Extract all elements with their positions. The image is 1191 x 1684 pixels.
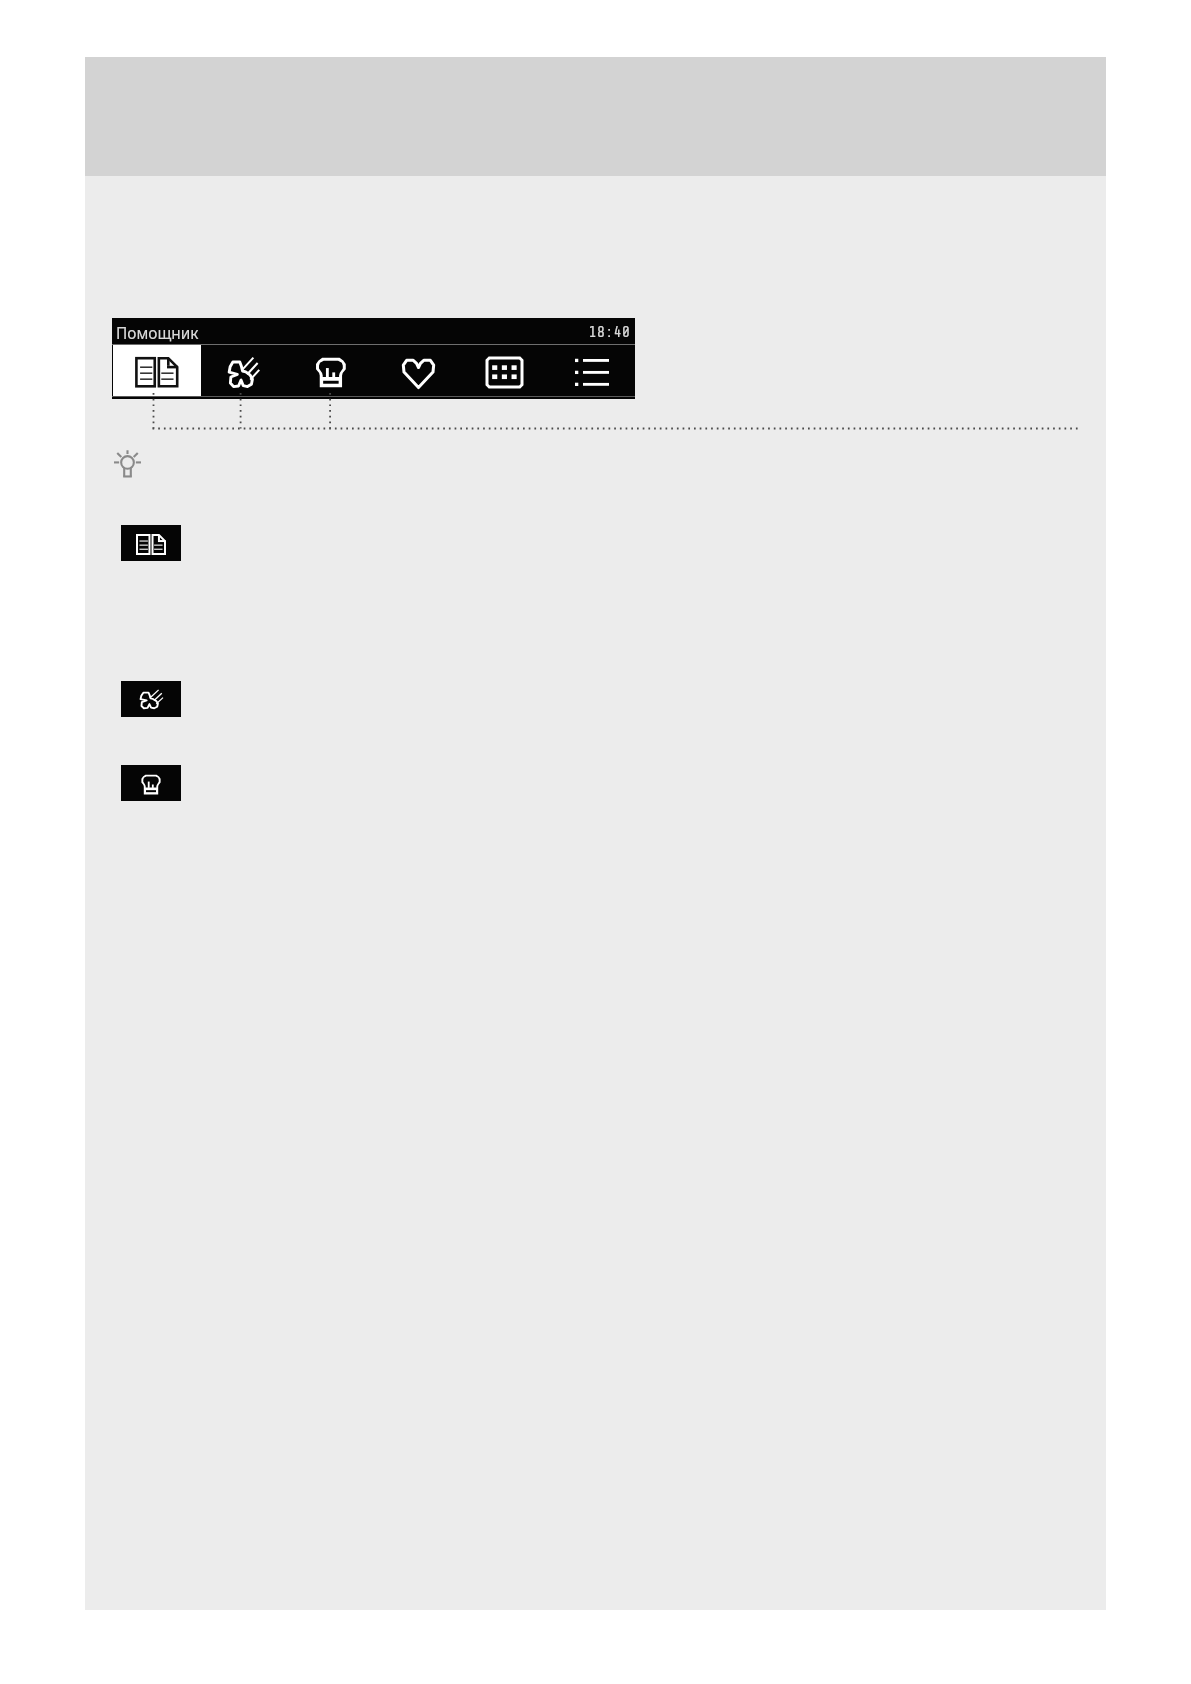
- button[interactable]: Recipes: [121, 765, 181, 801]
- button[interactable]: Cleaning: [200, 345, 287, 396]
- button[interactable]: Programmes: [461, 345, 548, 396]
- button[interactable]: Recipes: [287, 345, 374, 396]
- staticText: Помощник: [116, 323, 199, 344]
- button[interactable]: Assistant: [113, 345, 200, 396]
- button[interactable]: Cleaning: [121, 681, 181, 717]
- button[interactable]: Menu: [548, 345, 635, 396]
- button[interactable]: Assistant: [121, 525, 181, 561]
- staticText: 18:40: [112, 323, 630, 340]
- button[interactable]: Favourites: [374, 345, 461, 396]
